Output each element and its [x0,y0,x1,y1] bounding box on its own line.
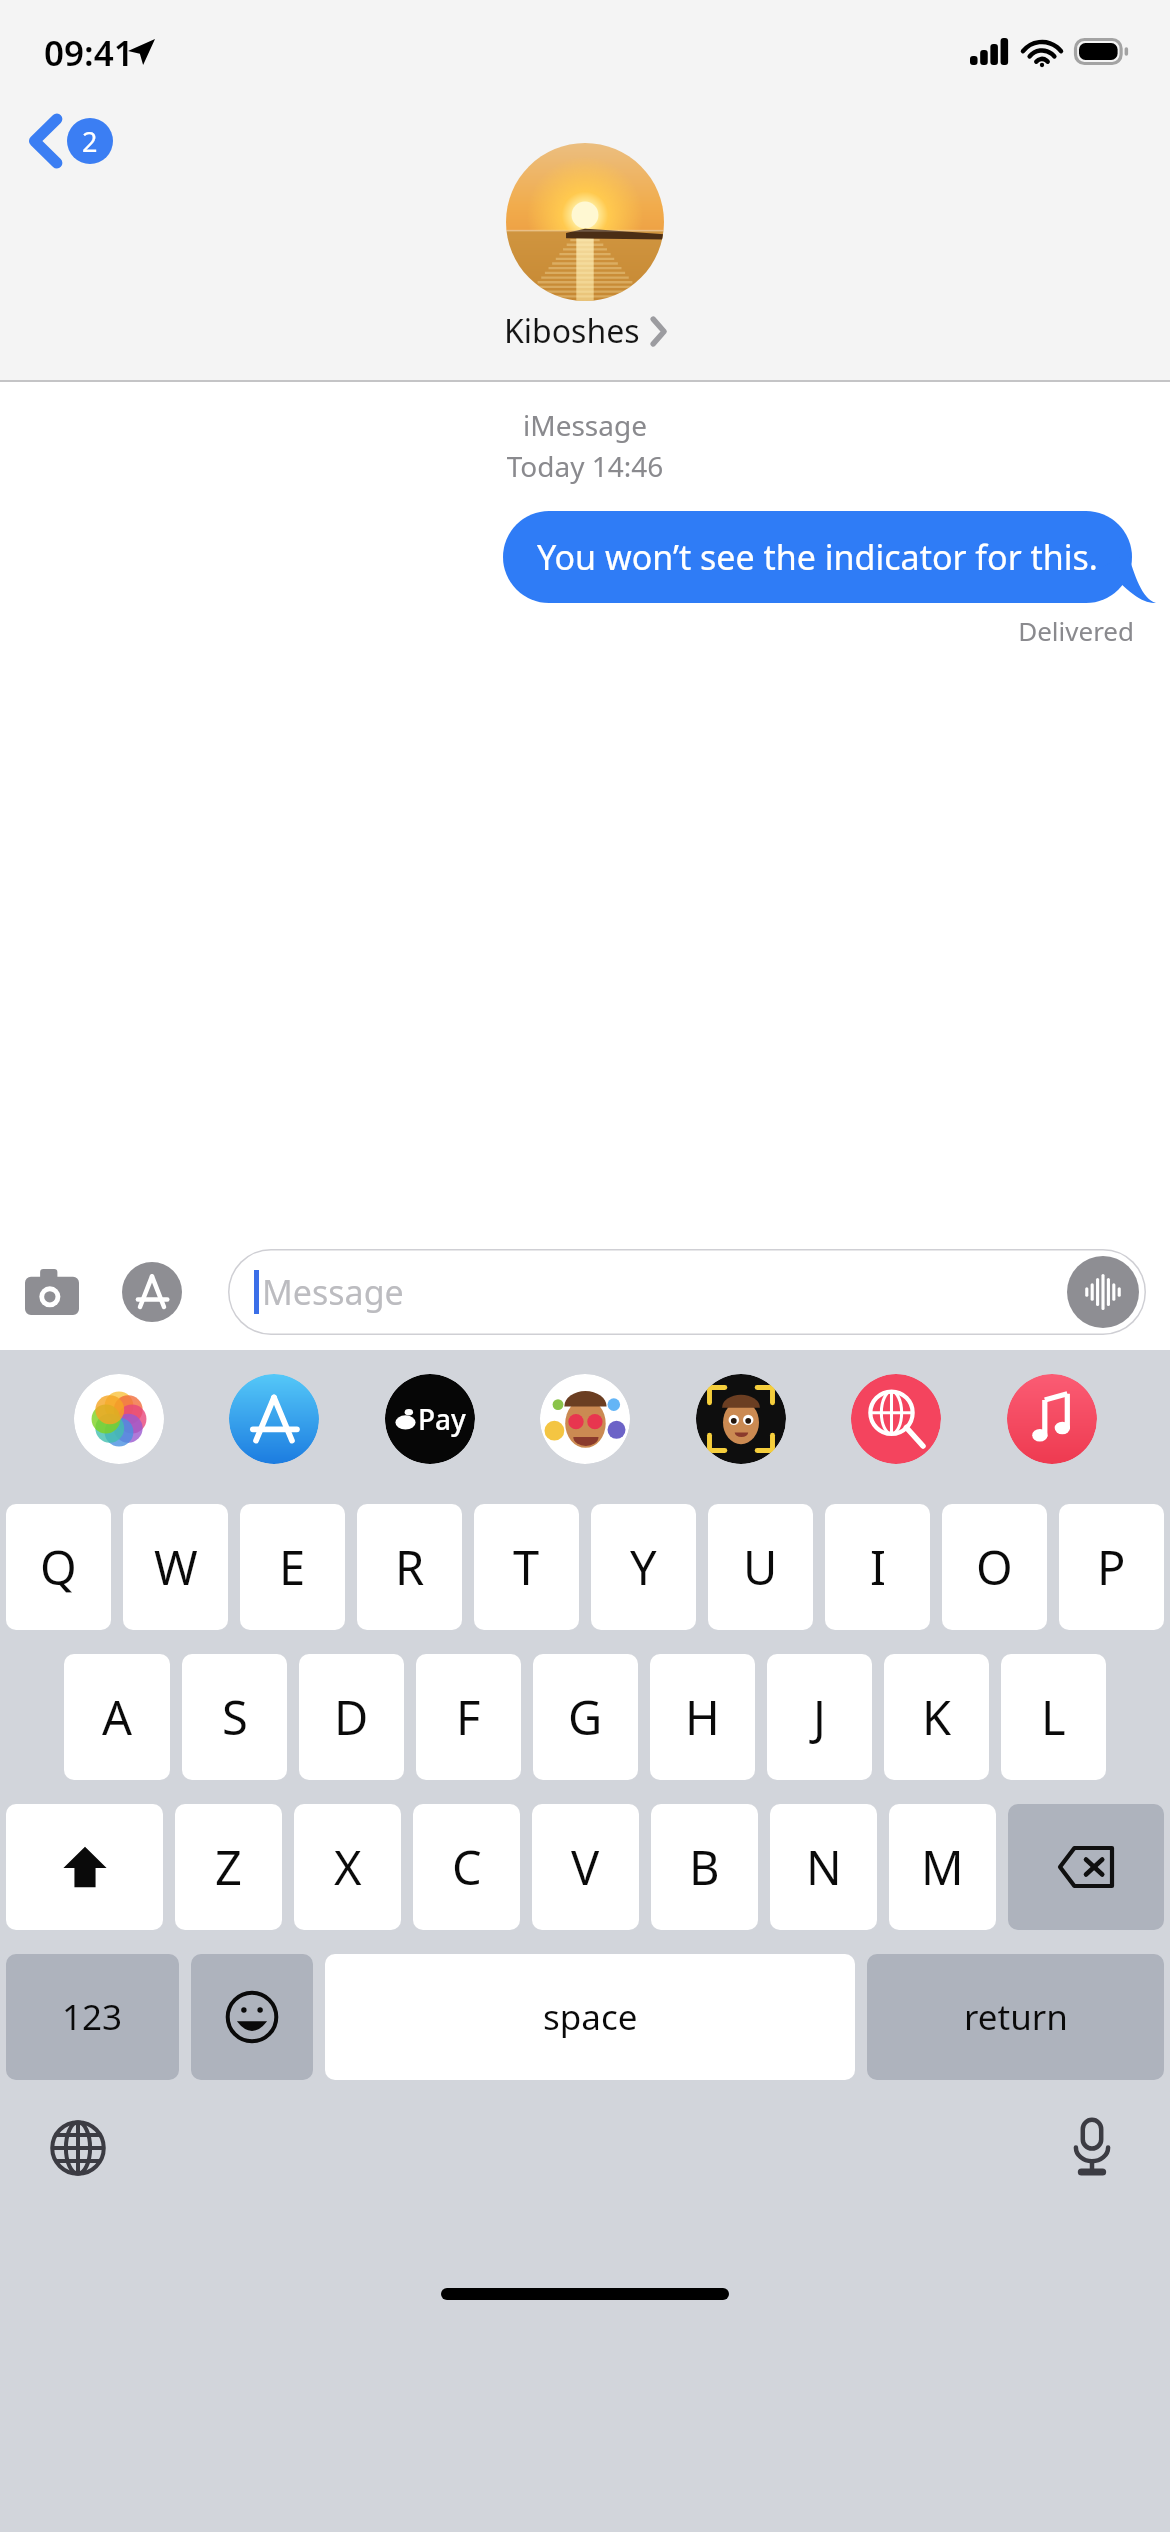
staticText: U [743,1535,778,1599]
staticText: M [921,1835,964,1899]
staticText: X [334,1835,362,1899]
button[interactable]: J [767,1654,872,1780]
button[interactable]: U [708,1504,813,1630]
button[interactable]: Dictation [1058,2114,1126,2182]
staticText: Delivered [0,613,1134,648]
button[interactable]: Photos [74,1374,164,1464]
staticText: K [922,1685,952,1749]
button[interactable]: Next keyboard [44,2114,112,2182]
button[interactable]: Y [591,1504,696,1630]
button[interactable]: Z [175,1804,282,1930]
staticText: C [452,1835,482,1899]
button[interactable]: L [1001,1654,1106,1780]
button[interactable]: App Store [229,1374,319,1464]
button[interactable]: S [182,1654,287,1780]
staticText: Kiboshes [504,309,640,353]
button[interactable]: Camera [18,1258,86,1326]
button[interactable]: Q [6,1504,111,1630]
button[interactable]: R [357,1504,462,1630]
button[interactable]: M [889,1804,996,1930]
button[interactable]: H [650,1654,755,1780]
staticText: D [334,1685,369,1749]
staticText: Pay [418,1400,466,1438]
staticText: G [568,1685,603,1749]
button[interactable]: C [413,1804,520,1930]
staticText: T [513,1535,540,1599]
staticText: You won’t see the indicator for this. [537,534,1098,580]
staticText: O [976,1535,1013,1599]
button[interactable]: space [325,1954,855,2080]
staticText: H [685,1685,720,1749]
button[interactable]: Message [228,1249,1146,1335]
staticText: A [102,1685,133,1749]
staticText: F [456,1685,481,1749]
staticText: B [689,1835,720,1899]
button[interactable]: return [867,1954,1164,2080]
staticText: J [813,1685,826,1749]
button[interactable]: Shift [6,1804,163,1930]
staticText: L [1041,1685,1066,1749]
button[interactable]: G [533,1654,638,1780]
button[interactable]: K [884,1654,989,1780]
staticText: return [964,1993,1068,2041]
button[interactable]: 123 [6,1954,179,2080]
staticText: Y [630,1535,657,1599]
staticText: I [870,1535,886,1599]
button[interactable]: Backspace [1008,1804,1164,1930]
button[interactable]: P [1059,1504,1164,1630]
staticText: 09:41 [44,29,134,77]
staticText: Today 14:46 [0,447,1170,485]
button[interactable]: Record audio message [1067,1256,1139,1328]
button[interactable]: W [123,1504,228,1630]
button[interactable]: Images [851,1374,941,1464]
staticText: E [279,1535,306,1599]
button[interactable]: Apple Pay [385,1374,475,1464]
staticText: 2 [82,123,98,160]
button[interactable]: Back to 2 conversations [24,106,119,176]
staticText: space [543,1993,638,2041]
button[interactable]: A [64,1654,170,1780]
button[interactable]: D [299,1654,404,1780]
staticText: Q [40,1535,77,1599]
staticText: N [806,1835,842,1899]
button[interactable]: X [294,1804,401,1930]
button[interactable]: iMessage apps [118,1258,186,1326]
staticText: 123 [62,1993,123,2041]
button[interactable]: E [240,1504,345,1630]
button[interactable]: O [942,1504,1047,1630]
staticText: Z [215,1835,242,1899]
button[interactable]: T [474,1504,579,1630]
staticText: S [222,1685,248,1749]
button[interactable]: N [770,1804,877,1930]
button[interactable]: Emoji [191,1954,313,2080]
button[interactable]: V [532,1804,639,1930]
button[interactable]: F [416,1654,521,1780]
button[interactable]: I [825,1504,930,1630]
button[interactable]: Memoji [696,1374,786,1464]
staticText: Message [262,1269,404,1315]
button[interactable]: Music [1007,1374,1097,1464]
button[interactable]: Stickers [540,1374,630,1464]
staticText: V [571,1835,600,1899]
button[interactable]: You won’t see the indicator for this. [503,511,1132,603]
staticText: P [1097,1535,1126,1599]
staticText: iMessage [0,406,1170,444]
button[interactable]: B [651,1804,758,1930]
button[interactable]: Kiboshes [504,143,666,353]
staticText: W [154,1535,198,1599]
staticText: R [395,1535,425,1599]
